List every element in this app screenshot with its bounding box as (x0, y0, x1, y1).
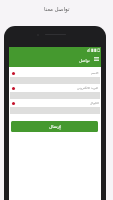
staticText: الجوال (90, 101, 99, 105)
staticText: البريد الالكتروني (77, 86, 99, 90)
button[interactable]: Menu (91, 54, 101, 64)
staticText: تواصل (79, 58, 90, 63)
staticText: إرسال (49, 124, 61, 129)
staticText: تواصل معنا (44, 5, 70, 13)
staticText: الاسم (91, 71, 99, 75)
button[interactable]: إرسال (11, 121, 98, 132)
